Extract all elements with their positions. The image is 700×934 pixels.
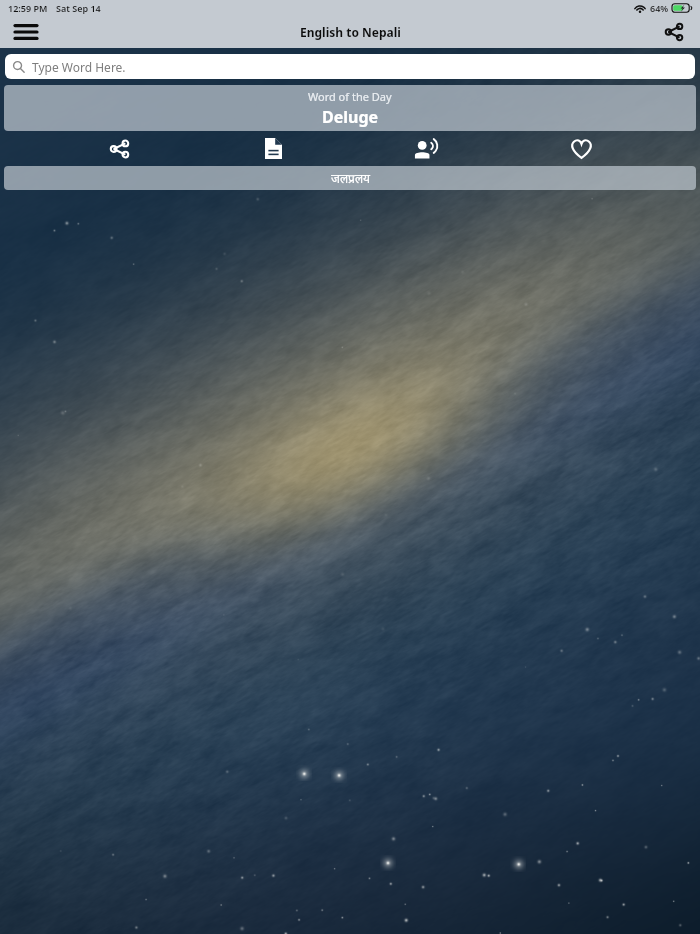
- button[interactable]: Definition: [196, 131, 350, 166]
- staticText: 64%: [650, 2, 669, 14]
- staticText: Sat Sep 14: [56, 2, 101, 14]
- staticText: जलप्रलय: [331, 170, 370, 186]
- button[interactable]: जलप्रलय: [4, 166, 696, 190]
- staticText: English to Nepali: [300, 24, 401, 40]
- button[interactable]: Word of the Day: [4, 85, 696, 131]
- button[interactable]: Favorite: [504, 131, 658, 166]
- staticText: Deluge: [322, 106, 379, 128]
- staticText: Type Word Here.: [32, 59, 126, 75]
- button[interactable]: Type Word Here.: [5, 54, 695, 79]
- staticText: Word of the Day: [308, 89, 392, 104]
- button[interactable]: Share: [656, 16, 692, 48]
- button[interactable]: Menu: [8, 16, 44, 48]
- button[interactable]: Share: [42, 131, 196, 166]
- staticText: 12:59 PM: [8, 2, 48, 14]
- button[interactable]: Pronounce: [350, 131, 504, 166]
